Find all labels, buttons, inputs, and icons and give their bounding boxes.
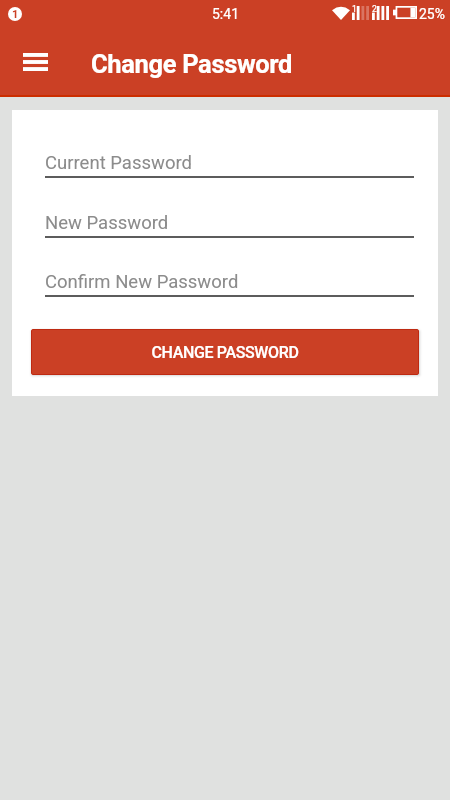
staticText: CHANGE PASSWORD	[151, 343, 299, 362]
staticText: Confirm New Password	[45, 271, 239, 293]
staticText: Current Password	[45, 152, 192, 174]
staticText: Change Password	[91, 49, 293, 79]
staticText: New Password	[45, 212, 169, 234]
staticText: 2	[372, 4, 377, 14]
staticText: 1	[12, 8, 19, 21]
staticText: 5:41	[212, 6, 239, 22]
button[interactable]: New Password	[45, 201, 414, 238]
button[interactable]: CHANGE PASSWORD	[31, 329, 419, 375]
button[interactable]: Confirm New Password	[45, 260, 414, 297]
button[interactable]: Open navigation drawer	[9, 36, 61, 88]
button[interactable]: Current Password	[45, 141, 414, 178]
staticText: 25%	[419, 6, 445, 22]
staticText: 1	[352, 4, 357, 14]
